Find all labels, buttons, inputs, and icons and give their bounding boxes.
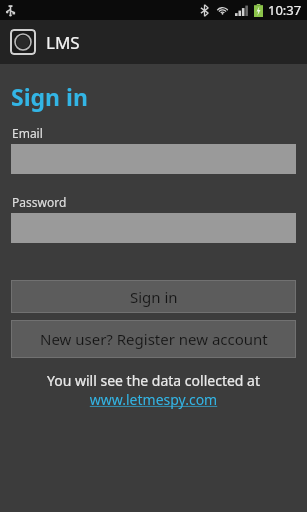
button[interactable]: You will see the data collected at www.l… (16, 371, 291, 409)
staticText: You will see the data collected at www.l… (16, 371, 291, 409)
staticText: 10:37 (268, 1, 302, 19)
staticText: Sign in (130, 287, 178, 307)
staticText: Email (12, 125, 43, 141)
button[interactable]: Sign in (11, 280, 296, 313)
staticText: LMS (46, 31, 80, 54)
staticText: Sign in (11, 81, 88, 112)
other: LMS app icon (10, 29, 36, 55)
staticText: Password (12, 194, 67, 210)
button[interactable]: New user? Register new account (11, 320, 296, 358)
staticText: New user? Register new account (40, 329, 268, 349)
